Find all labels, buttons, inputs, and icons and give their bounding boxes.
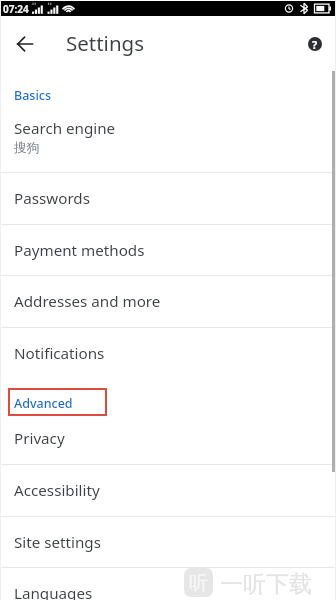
staticText: Passwords — [14, 188, 90, 209]
button[interactable]: Site settings — [0, 516, 336, 568]
button[interactable]: Passwords — [0, 172, 336, 224]
staticText: Advanced — [14, 395, 73, 412]
staticText: 一听下载 — [220, 570, 312, 599]
button[interactable]: Accessibility — [0, 464, 336, 516]
staticText: Privacy — [14, 428, 65, 449]
staticText: Settings — [66, 29, 145, 57]
staticText: Accessibility — [14, 480, 100, 501]
staticText: Notifications — [14, 343, 105, 364]
staticText: Basics — [14, 87, 51, 104]
button[interactable]: Notifications — [0, 327, 336, 379]
staticText: Payment methods — [14, 240, 145, 261]
button[interactable]: Advanced — [0, 378, 336, 412]
staticText: 听 — [189, 571, 208, 595]
button[interactable]: Privacy — [0, 412, 336, 464]
staticText: Addresses and more — [14, 291, 161, 312]
button[interactable]: Languages — [0, 567, 336, 600]
button[interactable]: Payment methods — [0, 224, 336, 276]
staticText: Site settings — [14, 532, 101, 553]
button[interactable]: Back — [9, 28, 41, 60]
staticText: Search engine — [14, 118, 116, 139]
staticText: ? — [312, 37, 318, 51]
button[interactable]: Search engine — [0, 102, 336, 172]
button[interactable]: Help — [301, 30, 329, 58]
button[interactable]: Addresses and more — [0, 275, 336, 327]
staticText: 07:24 — [3, 2, 29, 16]
staticText: 搜狗 — [14, 140, 39, 156]
staticText: Languages — [14, 583, 93, 600]
